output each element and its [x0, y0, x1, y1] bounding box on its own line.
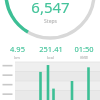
staticText: Steps: [44, 18, 57, 25]
button[interactable]: 4.95: [0, 44, 34, 59]
staticText: kcal: [47, 55, 54, 60]
staticText: 6,547: [31, 0, 70, 17]
button[interactable]: 251.41: [34, 44, 67, 59]
staticText: 251.41: [39, 44, 63, 54]
staticText: km: [14, 55, 20, 60]
button[interactable]: Activity chart: [0, 62, 100, 100]
staticText: 時間: [80, 55, 88, 60]
staticText: 01:50: [74, 44, 94, 54]
button[interactable]: Step goal progress: [0, 0, 100, 44]
staticText: 4.95: [10, 44, 25, 54]
button[interactable]: 01:50: [67, 44, 100, 59]
